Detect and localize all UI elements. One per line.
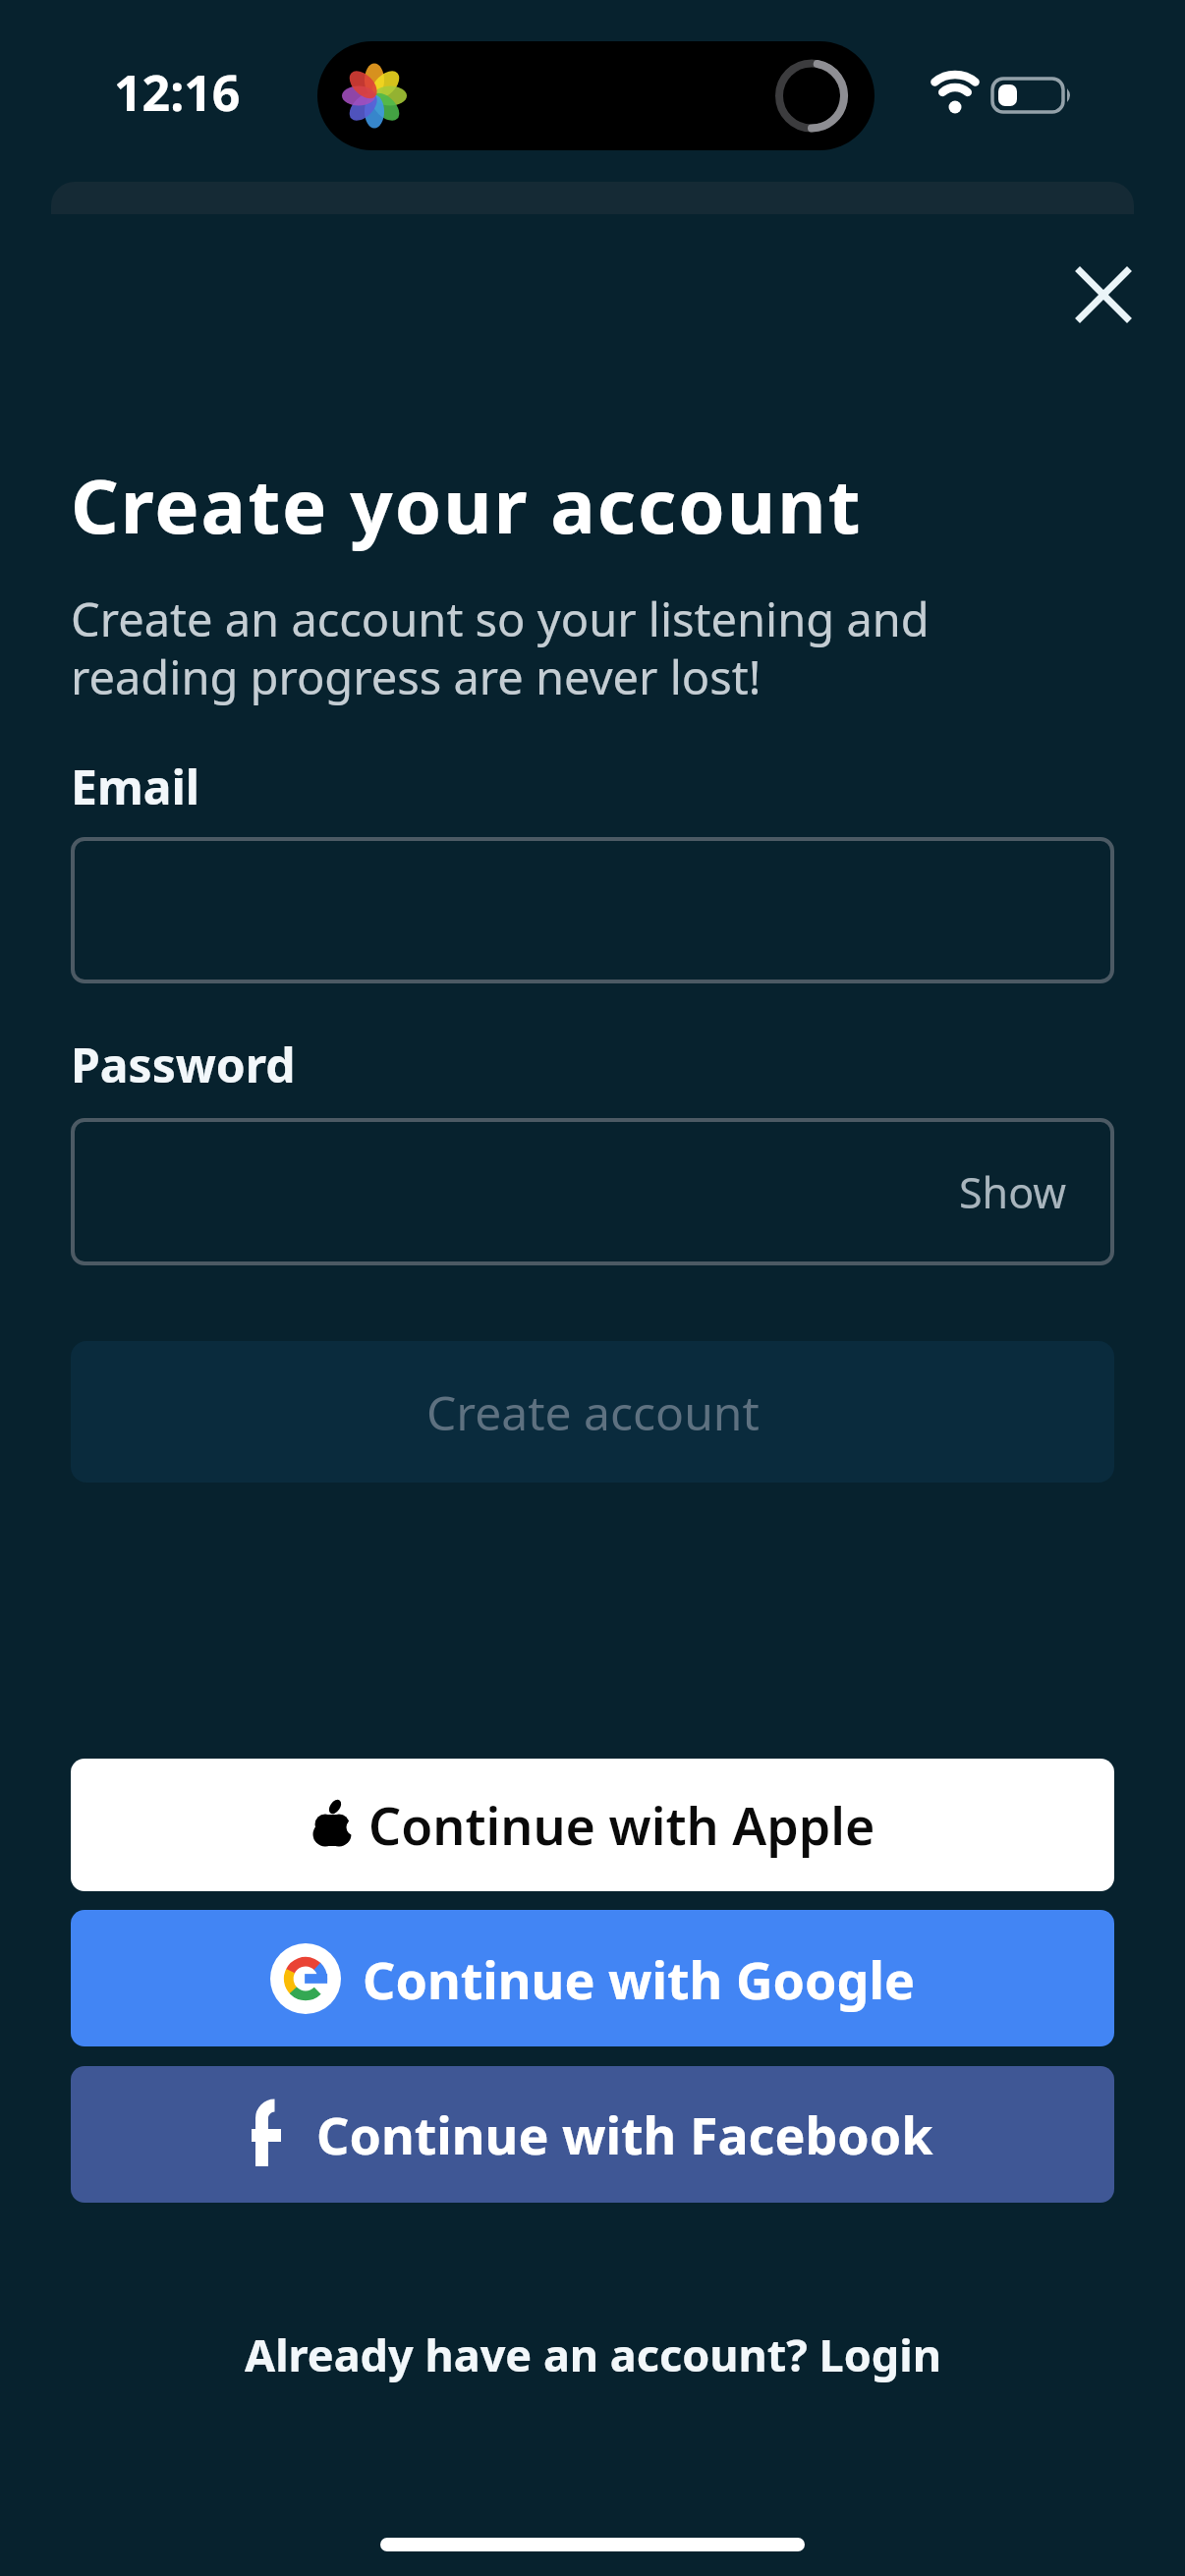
button[interactable]: Show [959,1163,1067,1221]
staticText: Create your account [71,454,863,556]
staticText: Continue with Google [363,1944,915,2014]
staticText: Email [71,755,200,818]
button[interactable]: Continue with Google [71,1910,1114,2046]
button[interactable]: Already have an account? Login [0,2324,1185,2384]
staticText: Create account [426,1380,760,1444]
staticText: Password [71,1033,296,1096]
staticText: Already have an account? Login [245,2324,941,2384]
staticText: 12:16 [114,59,241,126]
staticText: Create an account so your listening and … [71,588,930,708]
button[interactable]: Continue with Apple [71,1759,1114,1891]
button[interactable]: Create account [71,1341,1114,1483]
staticText: Continue with Apple [368,1790,875,1860]
staticText: Show [959,1163,1067,1221]
button[interactable]: Continue with Facebook [71,2066,1114,2203]
button[interactable] [1069,260,1138,329]
staticText: Continue with Facebook [316,2100,933,2169]
